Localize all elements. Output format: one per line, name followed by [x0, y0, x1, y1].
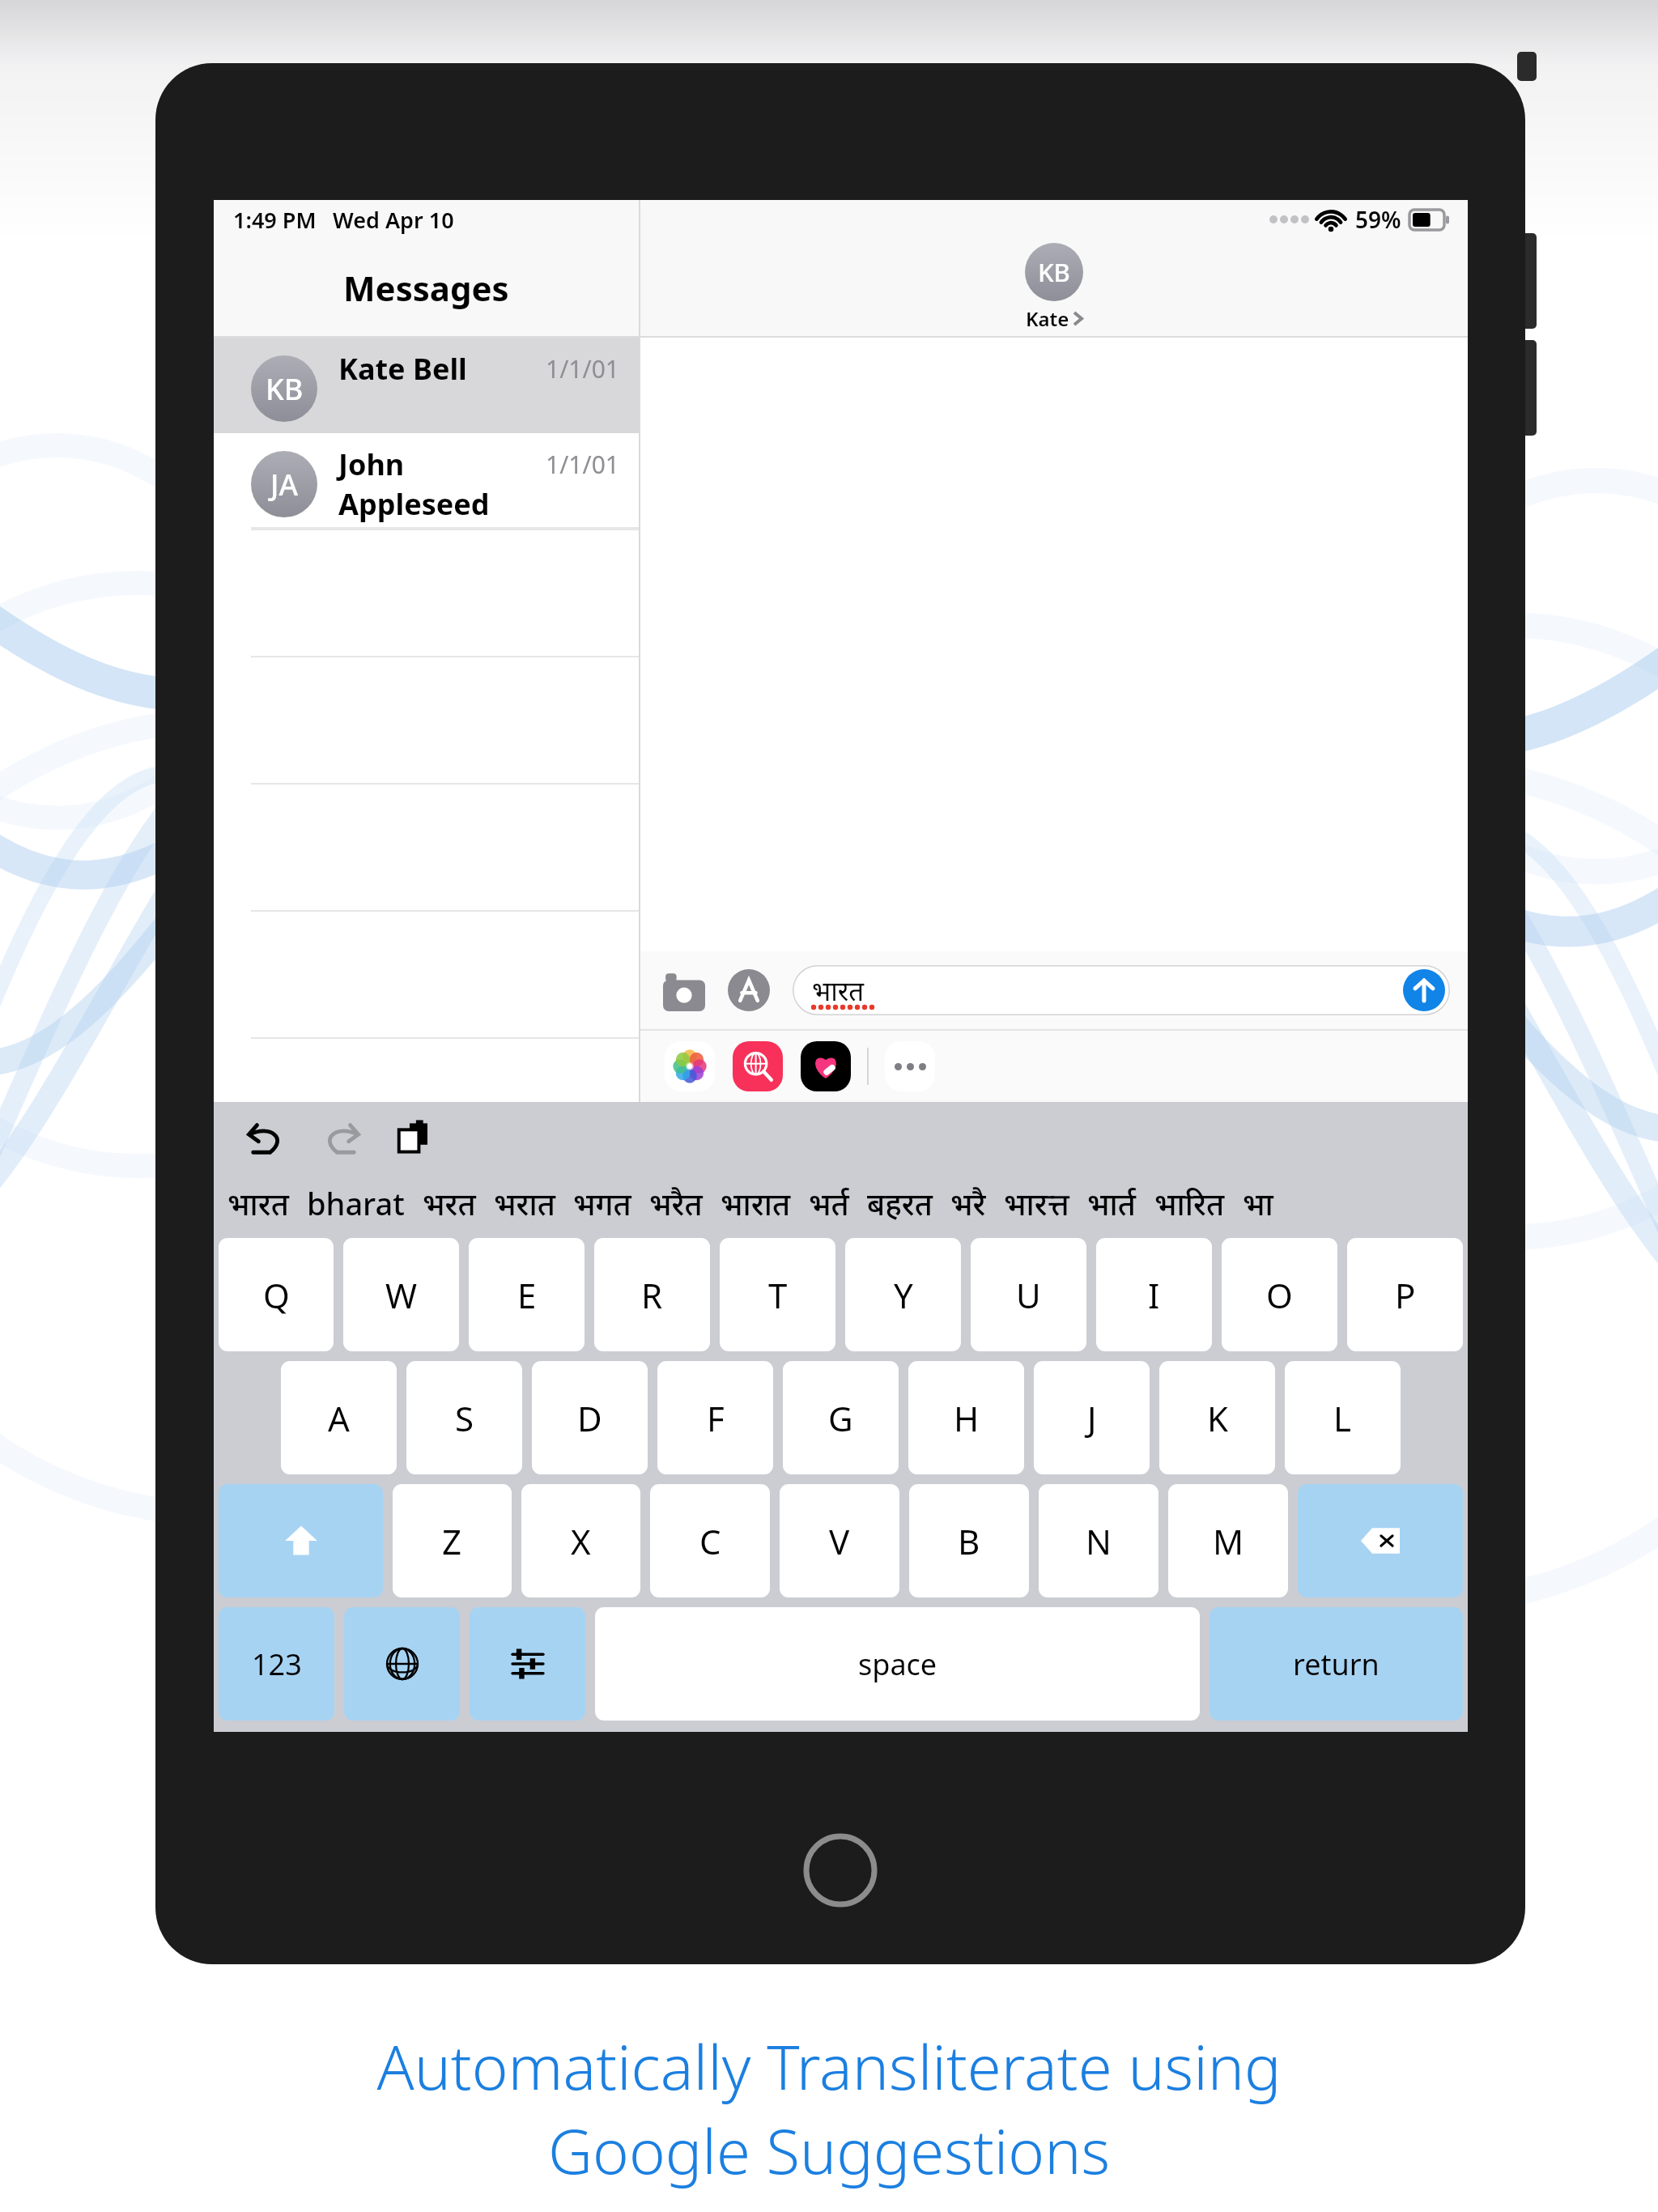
button[interactable]: K [1159, 1361, 1275, 1474]
button[interactable]: भारत्त [1004, 1182, 1069, 1224]
button[interactable]: Undo [238, 1109, 295, 1166]
button[interactable]: C [650, 1484, 770, 1597]
staticText: G [828, 1395, 853, 1441]
button[interactable]: N [1039, 1484, 1158, 1597]
button[interactable]: D [532, 1361, 648, 1474]
staticText: Google Suggestions [548, 2108, 1110, 2193]
button[interactable]: space [595, 1607, 1200, 1721]
staticText: भारात [721, 1182, 791, 1224]
staticText: O [1266, 1272, 1293, 1318]
staticText: John Appleseed [338, 445, 546, 524]
button[interactable]: H [908, 1361, 1024, 1474]
staticText: भगत [573, 1182, 631, 1224]
staticText: JA [270, 465, 299, 504]
staticText: Messages [343, 265, 509, 311]
staticText: P [1395, 1272, 1416, 1318]
button[interactable]: I [1096, 1238, 1212, 1351]
button[interactable]: E [469, 1238, 585, 1351]
staticText: E [517, 1272, 537, 1318]
staticText: KB [266, 369, 304, 409]
staticText: X [571, 1518, 591, 1564]
button[interactable]: भारत [227, 1182, 289, 1224]
staticText: M [1213, 1518, 1244, 1564]
button[interactable]: F [657, 1361, 773, 1474]
button[interactable]: भगत [573, 1182, 631, 1224]
button[interactable]: भरै [950, 1182, 986, 1224]
button[interactable]: P [1347, 1238, 1463, 1351]
button[interactable]: भारत [793, 965, 1450, 1015]
button[interactable]: J [1034, 1361, 1150, 1474]
button[interactable]: W [343, 1238, 459, 1351]
staticText: B [958, 1518, 980, 1564]
button[interactable]: बहरत [867, 1182, 933, 1224]
staticText: भरत [423, 1182, 476, 1224]
button[interactable]: Redo [312, 1109, 369, 1166]
button[interactable]: KB [214, 338, 639, 433]
button[interactable]: भरत [423, 1182, 476, 1224]
staticText: 1:49 PM [233, 205, 317, 235]
button[interactable]: Keyboard settings [470, 1607, 585, 1721]
button[interactable]: X [521, 1484, 640, 1597]
staticText: I [1148, 1272, 1160, 1318]
staticText: Automatically Transliterate using [376, 2024, 1282, 2108]
button[interactable]: भार्त [1087, 1182, 1137, 1224]
button[interactable]: भा [1243, 1182, 1273, 1224]
button[interactable]: Shift [219, 1484, 383, 1597]
button[interactable]: भर्त [809, 1182, 849, 1224]
button[interactable]: Switch keyboard [344, 1607, 460, 1721]
button[interactable]: S [406, 1361, 522, 1474]
staticText: space [858, 1644, 937, 1684]
button[interactable]: 123 [219, 1607, 334, 1721]
button[interactable]: U [971, 1238, 1086, 1351]
button[interactable]: भारात [721, 1182, 791, 1224]
staticText: C [699, 1518, 721, 1564]
button[interactable]: A [281, 1361, 397, 1474]
button[interactable]: bharat [307, 1182, 405, 1224]
button[interactable]: R [594, 1238, 710, 1351]
button[interactable]: JA [214, 433, 639, 529]
staticText: भरैत [649, 1182, 703, 1224]
staticText: V [829, 1518, 850, 1564]
button[interactable]: More [885, 1041, 935, 1091]
button[interactable]: L [1285, 1361, 1401, 1474]
button[interactable]: KB [1025, 243, 1083, 332]
button[interactable]: भरात [494, 1182, 555, 1224]
button[interactable]: return [1209, 1607, 1463, 1721]
button[interactable]: Camera [658, 964, 710, 1016]
staticText: S [455, 1395, 474, 1441]
button[interactable]: B [909, 1484, 1029, 1597]
button[interactable]: App Store [723, 964, 775, 1016]
button[interactable]: Y [845, 1238, 961, 1351]
button[interactable]: भरैत [649, 1182, 703, 1224]
staticText: भार्त [1087, 1182, 1137, 1224]
staticText: भा [1243, 1182, 1273, 1224]
button[interactable]: V [780, 1484, 899, 1597]
staticText: H [954, 1395, 980, 1441]
button[interactable]: Paste [387, 1109, 444, 1166]
staticText: 59% [1355, 204, 1401, 235]
button[interactable]: O [1222, 1238, 1337, 1351]
staticText: U [1016, 1272, 1041, 1318]
button[interactable]: Photos [665, 1041, 715, 1091]
button[interactable]: Digital Touch [801, 1041, 851, 1091]
staticText: Kate [1026, 305, 1069, 332]
button[interactable]: Send [1403, 969, 1445, 1011]
staticText: Q [263, 1272, 290, 1318]
staticText: N [1086, 1518, 1112, 1564]
button[interactable]: भारित [1154, 1182, 1225, 1224]
button[interactable]: Z [393, 1484, 512, 1597]
staticText: 1/1/01 [546, 448, 619, 481]
button[interactable]: Q [219, 1238, 334, 1351]
button[interactable]: M [1168, 1484, 1288, 1597]
staticText: L [1333, 1395, 1352, 1441]
staticText: J [1087, 1395, 1097, 1441]
button[interactable]: T [720, 1238, 835, 1351]
button[interactable]: Delete [1298, 1484, 1463, 1597]
staticText: F [707, 1395, 725, 1441]
button[interactable]: Image search [733, 1041, 783, 1091]
button[interactable]: G [783, 1361, 899, 1474]
staticText: R [641, 1272, 663, 1318]
staticText: T [768, 1272, 788, 1318]
staticText: return [1293, 1644, 1380, 1684]
staticText: भर्त [809, 1182, 849, 1224]
